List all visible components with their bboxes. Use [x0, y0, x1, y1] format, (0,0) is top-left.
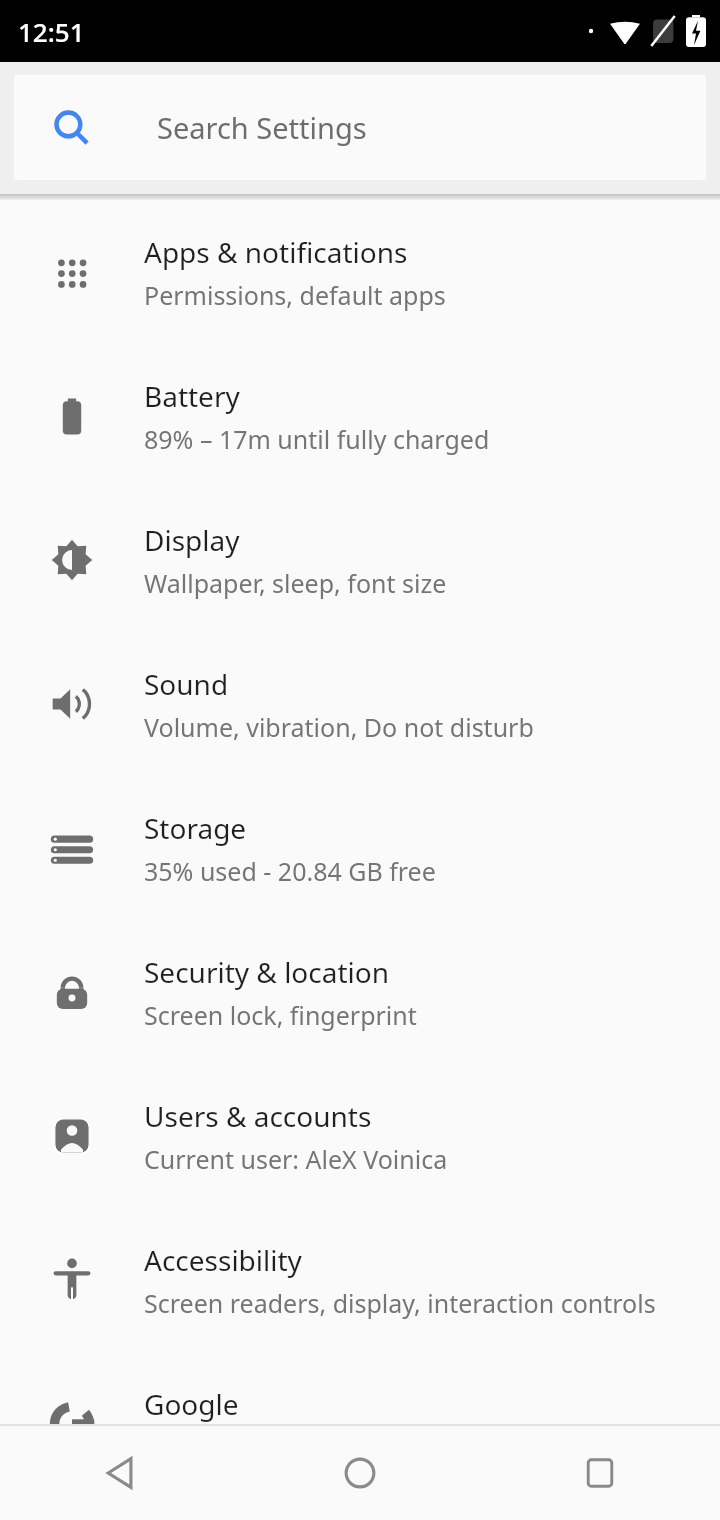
staticText: Screen lock, fingerprint — [144, 998, 417, 1032]
button[interactable]: Search Settings — [14, 75, 706, 180]
button[interactable]: Accessibility — [0, 1208, 720, 1352]
staticText: Wallpaper, sleep, font size — [144, 566, 447, 600]
button[interactable]: Users & accounts — [0, 1064, 720, 1208]
button[interactable]: Sound — [0, 632, 720, 776]
staticText: Search Settings — [157, 108, 367, 147]
staticText: Display — [144, 521, 240, 559]
button[interactable]: Battery — [0, 344, 720, 488]
button[interactable]: Home — [240, 1426, 480, 1520]
staticText: Services & preferences — [144, 1430, 411, 1464]
staticText: Screen readers, display, interaction con… — [144, 1286, 656, 1320]
button[interactable]: Security & location — [0, 920, 720, 1064]
staticText: Storage — [144, 809, 247, 847]
staticText: Battery — [144, 377, 240, 415]
staticText: 35% used - 20.84 GB free — [144, 854, 436, 888]
button[interactable]: Apps & notifications — [0, 200, 720, 344]
staticText: Apps & notifications — [144, 233, 408, 271]
button[interactable]: Storage — [0, 776, 720, 920]
button[interactable]: Google — [0, 1352, 720, 1496]
staticText: Google — [144, 1385, 239, 1423]
staticText: Volume, vibration, Do not disturb — [144, 710, 534, 744]
button[interactable]: Display — [0, 488, 720, 632]
staticText: Accessibility — [144, 1241, 302, 1279]
button[interactable]: Recents — [480, 1426, 720, 1520]
staticText: Permissions, default apps — [144, 278, 446, 312]
staticText: 89% – 17m until fully charged — [144, 422, 490, 456]
button[interactable]: Back — [0, 1426, 240, 1520]
staticText: Security & location — [144, 953, 390, 991]
staticText: Sound — [144, 665, 229, 703]
staticText: Users & accounts — [144, 1097, 372, 1135]
staticText: Current user: AleX Voinica — [144, 1142, 448, 1176]
staticText: 12:51 — [18, 14, 85, 49]
